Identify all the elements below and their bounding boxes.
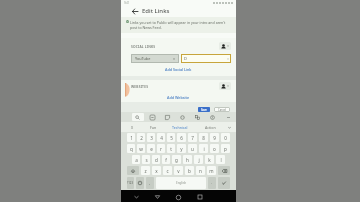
button[interactable]: 8 <box>199 133 208 142</box>
button[interactable]: GIF <box>145 112 160 122</box>
staticText: Save <box>201 108 207 112</box>
staticText: 6 <box>180 135 183 141</box>
staticText: 4 <box>160 135 163 141</box>
button[interactable]: m <box>207 166 216 175</box>
button[interactable]: Symbols <box>127 177 134 189</box>
staticText: Links you set to Public will appear in y… <box>130 20 232 30</box>
button[interactable]: p <box>221 144 230 153</box>
button[interactable]: i <box>199 144 208 153</box>
button[interactable]: Backspace <box>218 166 230 175</box>
button[interactable]: Space <box>156 177 206 189</box>
staticText: English <box>176 181 187 185</box>
button[interactable]: l <box>216 155 225 164</box>
staticText: w <box>139 146 143 152</box>
button[interactable]: Back <box>130 7 139 16</box>
button[interactable]: 6 <box>177 133 186 142</box>
button[interactable]: d <box>152 155 160 164</box>
button[interactable]: 7 <box>188 133 197 142</box>
button[interactable]: e <box>147 144 155 153</box>
button[interactable]: Recent apps <box>189 192 210 202</box>
button[interactable]: Home <box>168 192 189 202</box>
button[interactable]: Emoji <box>136 177 144 189</box>
button[interactable]: r <box>157 144 165 153</box>
button[interactable]: h <box>183 155 192 164</box>
staticText: SOCIAL LINKS <box>131 44 156 48</box>
staticText: x <box>155 168 158 174</box>
staticText: . <box>211 180 213 186</box>
staticText: n <box>199 168 202 174</box>
button[interactable]: Action <box>197 122 223 132</box>
button[interactable]: 1 <box>127 133 135 142</box>
staticText: Cancel <box>218 108 227 112</box>
button[interactable]: 3 <box>147 133 155 142</box>
button[interactable]: Comma <box>146 177 154 189</box>
staticText: r <box>160 146 162 152</box>
staticText: 5 <box>170 135 173 141</box>
staticText: , <box>149 180 151 186</box>
button[interactable]: Expand suggestions <box>223 122 236 132</box>
button[interactable]: D <box>181 54 231 63</box>
staticText: j <box>198 157 200 163</box>
staticText: h <box>186 157 189 163</box>
button[interactable]: 4 <box>157 133 165 142</box>
button[interactable]: z <box>141 166 150 175</box>
button[interactable]: Audience selector <box>219 82 231 90</box>
button[interactable]: o <box>210 144 219 153</box>
staticText: c <box>166 168 169 174</box>
staticText: a <box>135 157 138 163</box>
button[interactable]: b <box>185 166 194 175</box>
button[interactable]: u <box>188 144 197 153</box>
staticText: 8 <box>202 135 205 141</box>
staticText: Add Social Link <box>165 67 192 72</box>
button[interactable]: c <box>163 166 172 175</box>
button[interactable]: q <box>127 144 135 153</box>
button[interactable]: Settings <box>205 112 220 122</box>
button[interactable]: 2 <box>137 133 145 142</box>
staticText: Technical <box>172 125 188 130</box>
button[interactable]: Shift <box>127 166 139 175</box>
button[interactable]: Add Social Link <box>121 63 236 76</box>
button[interactable]: a <box>132 155 140 164</box>
button[interactable]: Emoji <box>175 112 190 122</box>
button[interactable]: YouTube <box>131 54 179 63</box>
button[interactable]: X <box>121 122 143 132</box>
button[interactable]: f <box>162 155 170 164</box>
button[interactable]: Cancel <box>214 107 230 112</box>
staticText: ?123 <box>127 181 134 185</box>
staticText: u <box>191 146 194 152</box>
button[interactable]: t <box>167 144 175 153</box>
staticText: Add Website <box>167 95 190 100</box>
button[interactable]: g <box>172 155 181 164</box>
button[interactable]: y <box>177 144 186 153</box>
staticText: i <box>203 146 205 152</box>
button[interactable]: 9 <box>210 133 219 142</box>
button[interactable]: Technical <box>163 122 197 132</box>
button[interactable]: n <box>196 166 205 175</box>
button[interactable]: k <box>205 155 214 164</box>
button[interactable]: Fun <box>143 122 163 132</box>
staticText: k <box>208 157 211 163</box>
button[interactable]: Sticker <box>160 112 175 122</box>
button[interactable]: 0 <box>221 133 230 142</box>
staticText: z <box>144 168 147 174</box>
staticText: 3 <box>150 135 153 141</box>
button[interactable]: x <box>152 166 161 175</box>
staticText: D <box>184 56 187 61</box>
button[interactable]: w <box>137 144 145 153</box>
staticText: 0 <box>224 135 227 141</box>
staticText: Edit Links <box>142 7 170 15</box>
button[interactable]: Add Website <box>121 92 236 102</box>
button[interactable]: Save <box>198 107 210 112</box>
button[interactable]: Hide keyboard <box>125 192 147 202</box>
button[interactable]: v <box>174 166 183 175</box>
button[interactable]: s <box>142 155 150 164</box>
button[interactable]: Back <box>147 192 168 202</box>
button[interactable]: Search <box>130 112 145 122</box>
button[interactable]: Translate <box>190 112 205 122</box>
button[interactable]: More keyboard tools <box>220 112 236 122</box>
button[interactable]: 5 <box>167 133 175 142</box>
button[interactable]: Audience selector <box>219 42 231 50</box>
button[interactable]: Done <box>218 177 230 189</box>
button[interactable]: j <box>194 155 203 164</box>
